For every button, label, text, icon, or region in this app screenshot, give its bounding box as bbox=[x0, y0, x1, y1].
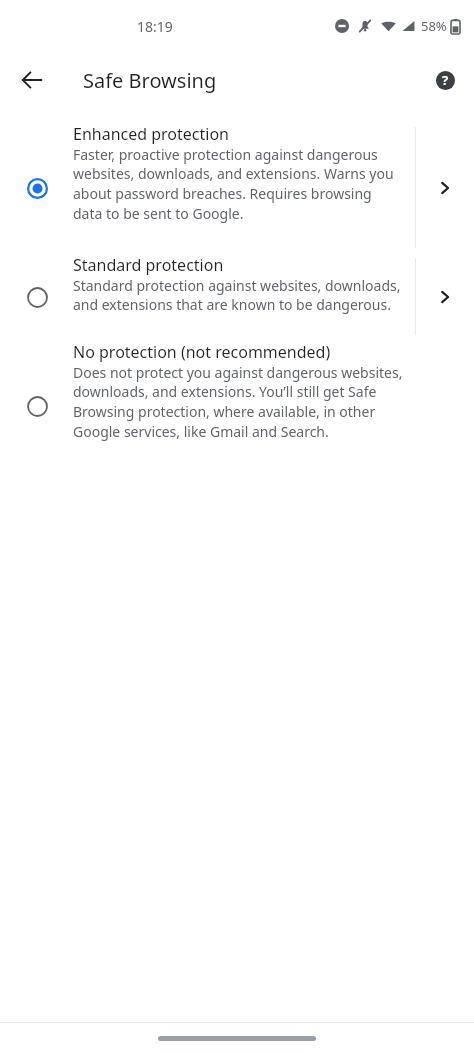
button[interactable]: Enhanced protection bbox=[0, 122, 474, 253]
staticText: Standard protection against websites, do… bbox=[73, 276, 403, 314]
staticText: 58% bbox=[421, 17, 447, 35]
staticText: Faster, proactive protection against dan… bbox=[73, 145, 403, 223]
staticText: Enhanced protection bbox=[73, 123, 230, 145]
button[interactable]: Standard protection details bbox=[425, 277, 465, 317]
button[interactable]: Enhanced protection details bbox=[425, 168, 465, 208]
button[interactable]: Standard protection bbox=[0, 253, 474, 340]
button[interactable]: No protection (not recommended) bbox=[0, 340, 474, 471]
button[interactable]: Help bbox=[425, 60, 465, 100]
staticText: Safe Browsing bbox=[83, 67, 217, 94]
button[interactable]: Back bbox=[10, 58, 54, 102]
staticText: ? bbox=[442, 71, 449, 89]
staticText: Does not protect you against dangerous w… bbox=[73, 363, 403, 441]
staticText: No protection (not recommended) bbox=[73, 341, 331, 363]
staticText: Standard protection bbox=[73, 254, 224, 276]
staticText: 18:19 bbox=[137, 17, 173, 36]
